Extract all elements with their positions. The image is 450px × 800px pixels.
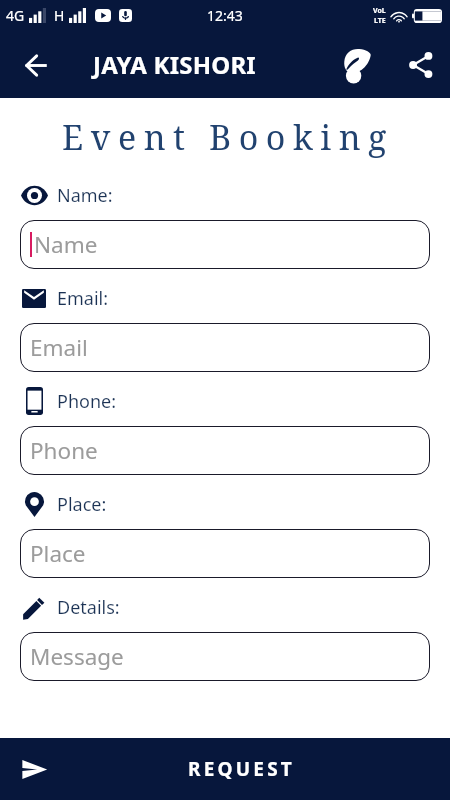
staticText: 12:43	[207, 6, 243, 25]
button[interactable]: Phone	[20, 426, 430, 475]
staticText: Message	[30, 641, 124, 672]
button[interactable]: Place	[20, 529, 430, 578]
staticText: Phone	[30, 435, 98, 466]
button[interactable]: Email	[20, 323, 430, 372]
button[interactable]: Send	[0, 738, 450, 800]
staticText: Email	[30, 332, 88, 363]
button[interactable]: Name	[20, 220, 430, 269]
staticText: Phone:	[57, 389, 117, 414]
staticText: Name:	[57, 183, 113, 208]
staticText: Name	[34, 229, 98, 260]
staticText: 4G	[6, 6, 25, 25]
button[interactable]: Share	[403, 47, 439, 83]
staticText: Place:	[57, 492, 107, 517]
button[interactable]: Message	[20, 632, 430, 681]
staticText: Details:	[57, 595, 120, 620]
staticText: VoL	[373, 6, 386, 16]
button[interactable]: Back	[16, 45, 56, 85]
staticText: H	[54, 6, 65, 25]
button[interactable]: App logo	[335, 44, 377, 86]
staticText: Email:	[57, 286, 109, 311]
staticText: LTE	[374, 16, 386, 26]
staticText: Place	[30, 538, 86, 569]
staticText: Event Booking	[3, 114, 450, 160]
staticText: JAYA KISHORI	[93, 48, 256, 81]
other: Send	[19, 754, 49, 784]
staticText: REQUEST	[188, 756, 295, 782]
